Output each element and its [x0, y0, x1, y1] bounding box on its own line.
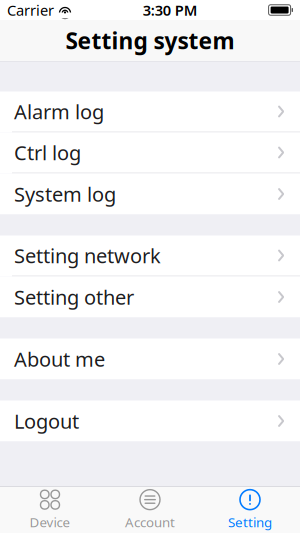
- staticText: Device: [29, 513, 70, 531]
- button[interactable]: System log: [0, 173, 300, 214]
- staticText: Logout: [14, 408, 79, 434]
- button[interactable]: Setting other: [0, 276, 300, 317]
- staticText: System log: [14, 181, 116, 207]
- staticText: Setting other: [14, 284, 134, 310]
- button[interactable]: Setting network: [0, 235, 300, 276]
- button[interactable]: Device: [0, 487, 100, 533]
- staticText: Carrier: [7, 0, 54, 20]
- staticText: About me: [14, 346, 105, 372]
- button[interactable]: About me: [0, 338, 300, 379]
- button[interactable]: Account: [100, 487, 200, 533]
- button[interactable]: Setting: [200, 487, 300, 533]
- button[interactable]: Logout: [0, 400, 300, 441]
- staticText: Alarm log: [14, 98, 104, 125]
- button[interactable]: Ctrl log: [0, 132, 300, 173]
- staticText: Setting system: [65, 25, 234, 55]
- staticText: Setting: [228, 513, 272, 531]
- staticText: Setting network: [14, 242, 161, 269]
- staticText: Account: [125, 513, 175, 531]
- button[interactable]: Alarm log: [0, 91, 300, 132]
- staticText: Ctrl log: [14, 139, 81, 166]
- staticText: 3:30 PM: [143, 0, 198, 20]
